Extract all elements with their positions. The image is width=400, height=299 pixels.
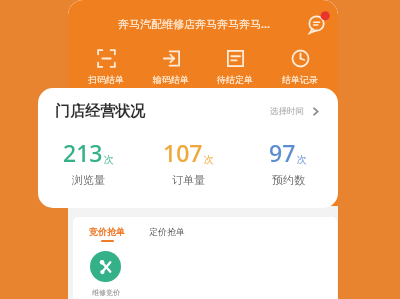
button[interactable]: 扫码结单 — [76, 47, 136, 87]
button[interactable]: 输码结单 — [141, 47, 201, 87]
button[interactable]: 维修竞价 — [90, 251, 121, 297]
staticText: 选择时间 — [270, 106, 304, 117]
staticText: 扫码结单 — [76, 74, 136, 85]
staticText: 次 — [104, 153, 114, 166]
staticText: 浏览量 — [72, 173, 105, 187]
button[interactable]: 结单记录 — [270, 47, 330, 87]
staticText: 门店经营状况 — [55, 102, 145, 121]
staticText: 次 — [297, 153, 307, 166]
staticText: 213 — [63, 137, 103, 168]
staticText: 待结定单 — [205, 74, 265, 85]
staticText: 次 — [204, 153, 214, 166]
staticText: 维修竞价 — [92, 288, 120, 297]
staticText: 97 — [269, 137, 296, 168]
button[interactable]: 待结定单 — [205, 47, 265, 87]
staticText: 定价抢单 — [149, 226, 185, 237]
button[interactable]: 选择时间 — [266, 102, 325, 121]
button[interactable]: 定价抢单 — [149, 226, 185, 242]
staticText: 107 — [163, 137, 203, 168]
button[interactable]: Messages — [306, 11, 330, 35]
staticText: 奔马汽配维修店奔马奔马奔马... — [82, 16, 306, 31]
staticText: 订单量 — [172, 173, 205, 187]
staticText: 结单记录 — [270, 74, 330, 85]
staticText: 预约数 — [272, 173, 305, 187]
staticText: 竞价抢单 — [89, 226, 125, 237]
staticText: 输码结单 — [141, 74, 201, 85]
button[interactable]: 竞价抢单 — [89, 226, 125, 242]
